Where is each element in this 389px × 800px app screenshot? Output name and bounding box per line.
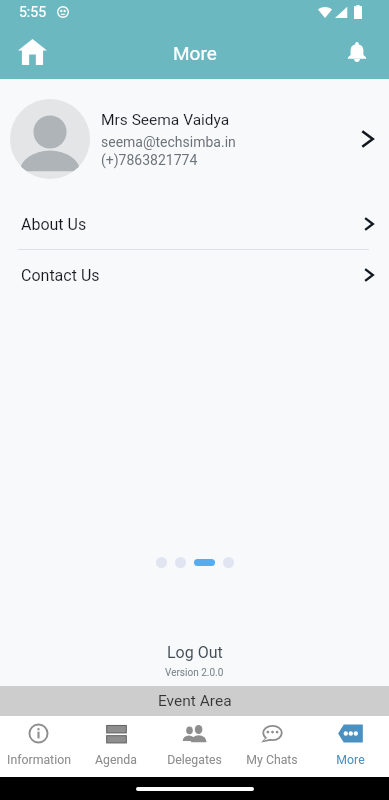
button[interactable]: My Chats [233,716,311,777]
staticText: Contact Us [21,266,100,285]
staticText: More [173,42,217,64]
button[interactable] [156,557,167,568]
staticText: Mrs Seema Vaidya [101,111,230,129]
button[interactable]: Log Out [0,642,389,679]
button[interactable]: More [311,716,389,777]
staticText: (+)7863821774 [101,152,198,168]
button[interactable]: Mrs Seema Vaidya [0,79,389,199]
staticText: 5:55 [19,4,46,20]
staticText: Log Out [167,643,223,662]
button[interactable]: Delegates [155,716,233,777]
staticText: My Chats [246,753,298,767]
button[interactable] [194,559,215,566]
button[interactable]: About Us [0,199,389,249]
staticText: Information [7,753,71,767]
button[interactable]: Information [0,716,77,777]
staticText: About Us [21,215,87,234]
staticText: Delegates [167,753,222,767]
staticText: Version 2.0.0 [165,667,224,679]
staticText: Agenda [95,753,137,767]
button[interactable]: Home [4,25,60,78]
button[interactable]: Notifications [333,26,381,79]
staticText: seema@techsimba.in [101,134,236,150]
staticText: Event Area [158,692,232,710]
button[interactable]: Contact Us [0,250,389,300]
staticText: More [336,753,365,767]
button[interactable]: Agenda [77,716,155,777]
button[interactable] [175,557,186,568]
button[interactable] [223,557,234,568]
